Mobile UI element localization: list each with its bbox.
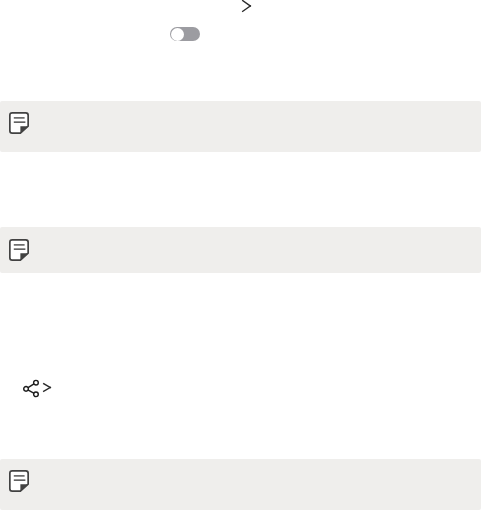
button[interactable]: Note bbox=[0, 227, 481, 273]
button[interactable]: Note bbox=[0, 459, 481, 510]
button[interactable]: Note bbox=[0, 101, 481, 152]
button[interactable]: Open bbox=[0, 0, 483, 12]
button[interactable]: Toggle setting bbox=[0, 12, 483, 44]
button[interactable]: Share bbox=[23, 380, 39, 397]
button[interactable]: Switch, off bbox=[170, 27, 200, 41]
button[interactable]: More bbox=[43, 383, 51, 392]
